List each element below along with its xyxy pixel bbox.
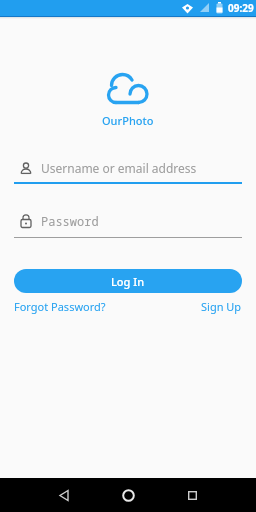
staticText: OurPhoto	[102, 113, 154, 128]
staticText: Password	[41, 213, 99, 229]
staticText: Username or email address	[41, 160, 197, 176]
staticText: 09:29	[228, 1, 254, 15]
button[interactable]	[59, 490, 70, 501]
button[interactable]: Forgot Password?	[14, 299, 106, 314]
button[interactable]	[122, 489, 135, 502]
button[interactable]	[188, 491, 197, 500]
staticText: Log In	[111, 274, 145, 289]
button[interactable]: Password	[14, 213, 242, 238]
button[interactable]: Username or email address	[14, 160, 242, 184]
button[interactable]: Sign Up	[201, 299, 242, 314]
button[interactable]: Log In	[14, 269, 242, 293]
